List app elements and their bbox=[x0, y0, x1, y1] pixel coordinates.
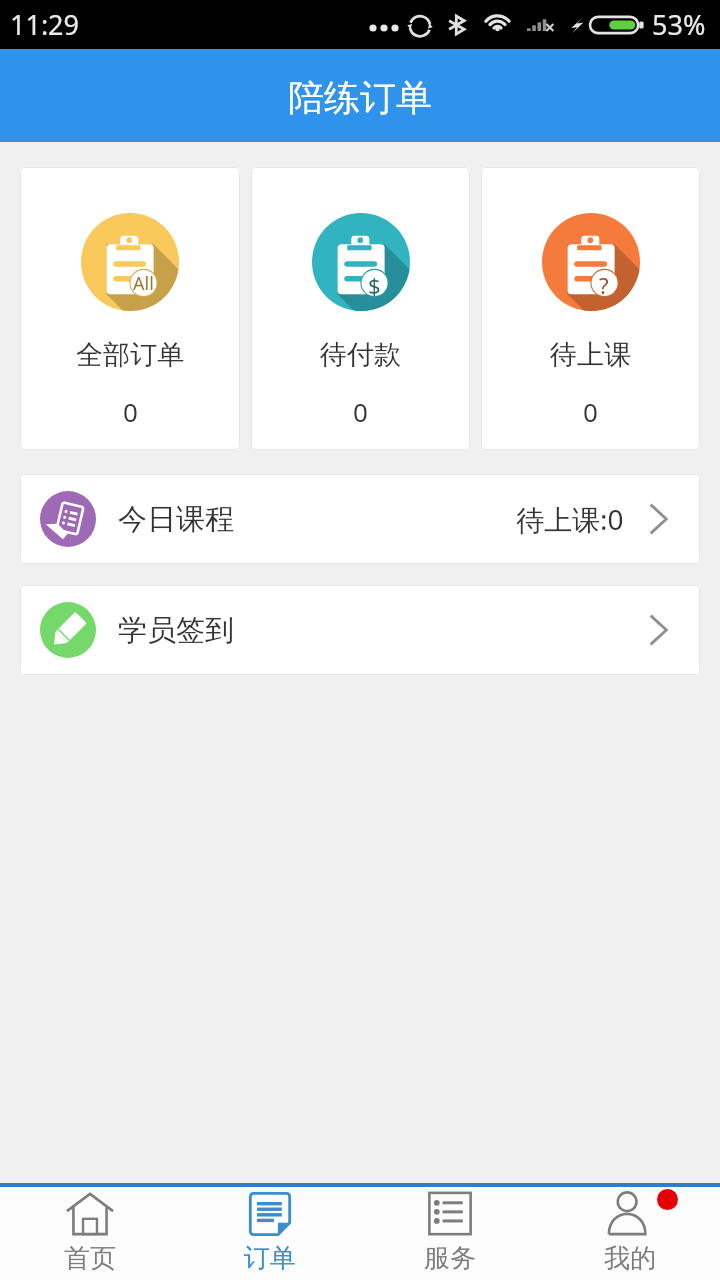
button[interactable]: 待上课 bbox=[481, 167, 700, 450]
staticText: 53% bbox=[652, 6, 706, 43]
staticText: 11:29 bbox=[10, 6, 80, 43]
staticText: 我的 bbox=[604, 1242, 656, 1275]
button[interactable]: Home bbox=[0, 1187, 180, 1277]
button[interactable]: Orders bbox=[180, 1187, 360, 1277]
staticText: 0 bbox=[583, 394, 598, 429]
staticText: 今日课程 bbox=[118, 501, 234, 538]
button[interactable]: 全部订单 bbox=[20, 167, 240, 450]
staticText: 待上课 bbox=[550, 338, 631, 372]
staticText: 服务 bbox=[424, 1242, 476, 1275]
staticText: 全部订单 bbox=[76, 338, 184, 372]
staticText: 首页 bbox=[64, 1242, 116, 1275]
staticText: 0 bbox=[353, 394, 368, 429]
staticText: 待上课:0 bbox=[516, 500, 624, 538]
staticText: 订单 bbox=[244, 1242, 296, 1275]
staticText: 待付款 bbox=[320, 338, 401, 372]
staticText: $ bbox=[368, 270, 381, 296]
button[interactable]: Today's courses bbox=[20, 474, 700, 564]
button[interactable]: Student sign in bbox=[20, 585, 700, 675]
staticText: ? bbox=[599, 270, 609, 296]
button[interactable]: 待付款 bbox=[251, 167, 470, 450]
button[interactable]: Services bbox=[360, 1187, 540, 1277]
staticText: 0 bbox=[123, 394, 138, 429]
button[interactable]: Profile bbox=[540, 1187, 720, 1277]
staticText: 学员签到 bbox=[118, 612, 234, 649]
staticText: 陪练订单 bbox=[288, 75, 432, 120]
staticText: All bbox=[133, 271, 154, 296]
